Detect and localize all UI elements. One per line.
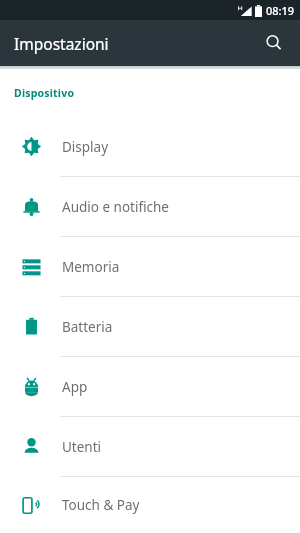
staticText: Batteria: [62, 318, 113, 336]
staticText: Audio e notifiche: [62, 198, 169, 216]
staticText: 08:19: [266, 3, 295, 18]
staticText: Touch & Pay: [62, 496, 140, 514]
staticText: Display: [62, 138, 109, 156]
button[interactable]: Cerca: [254, 23, 294, 63]
button[interactable]: Batteria: [0, 297, 300, 356]
button[interactable]: Utenti: [0, 417, 300, 476]
staticText: Memoria: [62, 258, 120, 276]
staticText: App: [62, 378, 88, 396]
button[interactable]: Memoria: [0, 237, 300, 296]
button[interactable]: App: [0, 357, 300, 416]
button[interactable]: Touch & Pay: [0, 477, 300, 533]
staticText: Impostazioni: [14, 33, 109, 54]
staticText: Utenti: [62, 438, 102, 456]
staticText: Dispositivo: [14, 86, 75, 100]
button[interactable]: Audio e notifiche: [0, 177, 300, 236]
button[interactable]: Display: [0, 117, 300, 176]
